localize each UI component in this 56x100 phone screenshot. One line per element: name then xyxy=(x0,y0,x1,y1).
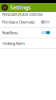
staticText: Tentang Kami xyxy=(2,40,25,46)
button[interactable]: Tentang Kami xyxy=(0,38,56,48)
staticText: PENGATURAN UMUM xyxy=(2,12,43,17)
staticText: Settings xyxy=(10,4,31,11)
staticText: Pembaca Otomatis xyxy=(2,19,35,25)
staticText: Notifikasi xyxy=(2,30,18,35)
button[interactable]: Notifikasi xyxy=(0,28,56,38)
button[interactable]: Pembaca Otomatis xyxy=(0,17,56,27)
